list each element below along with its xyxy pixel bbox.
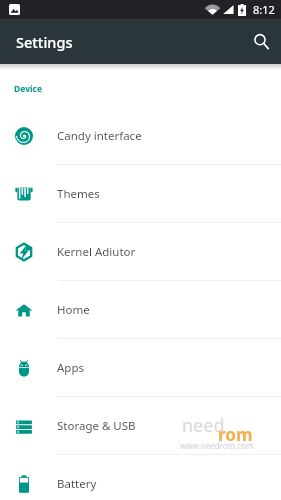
staticText: Themes	[57, 186, 100, 202]
staticText: rom	[218, 423, 253, 446]
button[interactable]: Themes	[0, 165, 281, 223]
staticText: Settings	[16, 32, 73, 52]
staticText: 8:12	[253, 2, 275, 17]
button[interactable]: Storage & USB	[0, 397, 281, 455]
staticText: Battery	[57, 476, 97, 492]
staticText: Home	[57, 302, 90, 318]
button[interactable]: Home	[0, 281, 281, 339]
staticText: Device	[14, 83, 42, 95]
button[interactable]: Battery	[0, 455, 281, 500]
button[interactable]: Apps	[0, 339, 281, 397]
staticText: Apps	[57, 360, 85, 376]
staticText: www.needrom.com	[180, 440, 254, 451]
staticText: need	[182, 413, 225, 438]
staticText: Kernel Adiutor	[57, 244, 136, 260]
staticText: Storage & USB	[57, 418, 136, 434]
button[interactable]: Candy interface	[0, 107, 281, 165]
staticText: Candy interface	[57, 128, 142, 144]
button[interactable]: Kernel Adiutor	[0, 223, 281, 281]
button[interactable]: Search	[245, 25, 277, 57]
